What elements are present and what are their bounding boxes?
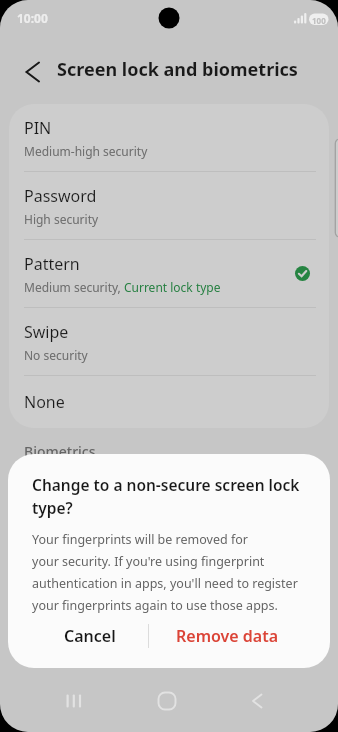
button[interactable]: None [9,376,329,428]
button[interactable] [0,47,44,91]
staticText: Medium security, Current lock type [24,279,221,295]
staticText: PIN [24,117,52,139]
button[interactable] [149,681,189,721]
staticText: No security [24,347,88,363]
button[interactable]: PIN [9,104,329,171]
button[interactable]: Remove data [149,614,306,658]
button[interactable] [239,681,279,721]
button[interactable]: Cancel [32,614,148,658]
button[interactable]: Pattern [9,240,329,307]
button[interactable] [59,681,99,721]
staticText: High security [24,211,99,227]
staticText: 10:00 [17,10,48,26]
staticText: Remove data [176,625,279,647]
button[interactable]: Swipe [9,308,329,375]
staticText: 100 [312,15,326,26]
staticText: Screen lock and biometrics [57,57,298,82]
staticText: Pattern [24,253,80,275]
staticText: Medium-high security [24,143,148,159]
button[interactable]: Password [9,172,329,239]
staticText: Swipe [24,321,69,343]
staticText: Password [24,185,97,207]
staticText: Change to a non-secure screen lock type? [32,474,300,519]
staticText: Your fingerprints will be removed for yo… [32,531,298,614]
staticText: None [24,391,65,413]
staticText: Biometrics [24,442,96,461]
staticText: Cancel [64,625,116,647]
